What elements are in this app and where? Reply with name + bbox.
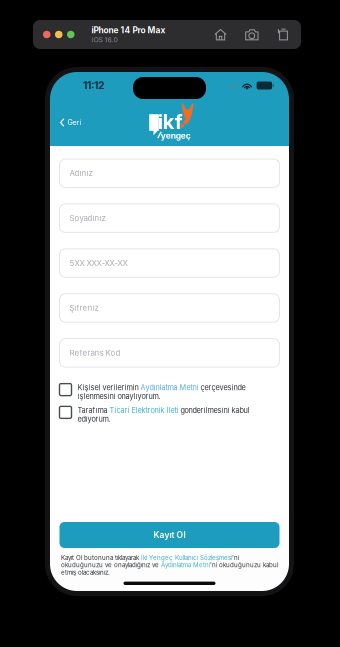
button[interactable]: Kişisel verilerimin Aydınlatma Metni çer… <box>59 383 279 401</box>
staticText: Şifreniz <box>69 303 98 313</box>
button[interactable]: Rotate <box>272 27 294 41</box>
button[interactable]: Screenshot <box>240 27 264 41</box>
button[interactable]: Home <box>209 27 232 41</box>
button[interactable]: 5XX XXX-XX-XX <box>59 249 279 277</box>
button[interactable]: Referans Kod <box>59 339 279 367</box>
staticText: Kayıt Ol <box>153 530 185 540</box>
staticText: iOS 16.0 <box>91 36 117 44</box>
staticText: iPhone 14 Pro Max <box>91 25 165 35</box>
button[interactable]: Şifreniz <box>59 294 279 322</box>
staticText: Tarafıma Ticari Elektronik İleti gönderi… <box>77 406 249 423</box>
staticText: Soyadınız <box>69 213 105 223</box>
staticText: 5XX XXX-XX-XX <box>69 258 127 268</box>
button[interactable]: Adınız <box>59 159 279 187</box>
staticText: 11:12 <box>83 79 104 92</box>
button[interactable]: Kayıt Ol <box>59 522 279 548</box>
staticText: Kişisel verilerimin Aydınlatma Metni çer… <box>77 383 245 401</box>
staticText: Kayıt Ol butonuna tıklayarak İki Yengeç … <box>61 554 278 576</box>
button[interactable]: Soyadınız <box>59 204 279 232</box>
staticText: Geri <box>67 118 81 127</box>
staticText: Referans Kod <box>69 348 120 358</box>
staticText: Adınız <box>69 168 92 178</box>
staticText: yengeç <box>161 130 191 141</box>
button[interactable]: Geri <box>50 110 81 135</box>
staticText: ikf <box>158 110 183 134</box>
button[interactable]: Tarafıma Ticari Elektronik İleti gönderi… <box>59 406 279 423</box>
